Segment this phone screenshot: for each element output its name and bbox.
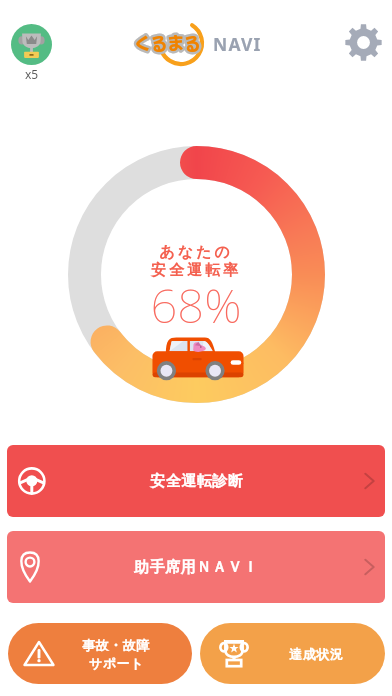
button[interactable]: 事故・故障 — [8, 623, 192, 684]
button[interactable]: Settings — [344, 23, 383, 62]
staticText: 68% — [96, 273, 296, 337]
button[interactable]: 安全運転診断 — [7, 445, 385, 517]
button[interactable]: Achievements — [11, 24, 52, 65]
staticText: 安全運転診断 — [150, 472, 243, 491]
staticText: あなたの — [96, 243, 296, 262]
button[interactable]: 助手席用ＮＡＶＩ — [7, 531, 385, 603]
staticText: 安全運転率 — [96, 261, 296, 280]
staticText: くるまる — [134, 30, 201, 55]
staticText: くるまる — [134, 30, 201, 55]
staticText: サポート — [89, 655, 144, 671]
staticText: 助手席用ＮＡＶＩ — [134, 558, 258, 577]
staticText: 達成状況 — [289, 646, 343, 662]
staticText: 事故・故障 — [82, 637, 150, 653]
staticText: NAVI — [213, 32, 262, 56]
staticText: x5 — [11, 66, 52, 82]
button[interactable]: 達成状況 — [200, 623, 385, 684]
